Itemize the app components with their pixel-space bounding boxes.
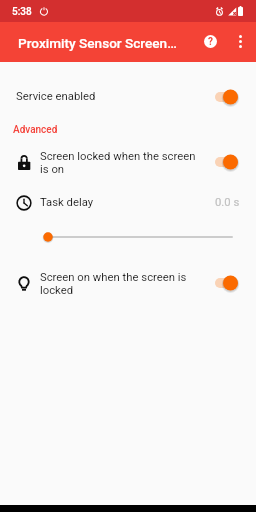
staticText: Screen on when the screen is (40, 271, 187, 284)
staticText: Screen locked when the screen (40, 150, 196, 163)
button[interactable]: Help (193, 24, 228, 59)
staticText: Service enabled (16, 90, 96, 103)
staticText: 0.0 s (215, 196, 240, 209)
staticText: Task delay (40, 196, 94, 209)
button[interactable]: Service enabled (0, 82, 256, 111)
button[interactable]: Screen on when the screen is (0, 269, 256, 299)
staticText: Advanced (13, 124, 58, 136)
button[interactable]: More options (223, 24, 256, 59)
staticText: locked (40, 284, 74, 297)
staticText: is on (40, 163, 65, 176)
staticText: Proximity Sensor Screen… (18, 35, 177, 51)
button[interactable]: Task delay (0, 190, 256, 215)
staticText: ? (208, 36, 213, 48)
button[interactable]: Screen locked when the screen (0, 148, 256, 178)
staticText: 5:38 (12, 6, 32, 18)
